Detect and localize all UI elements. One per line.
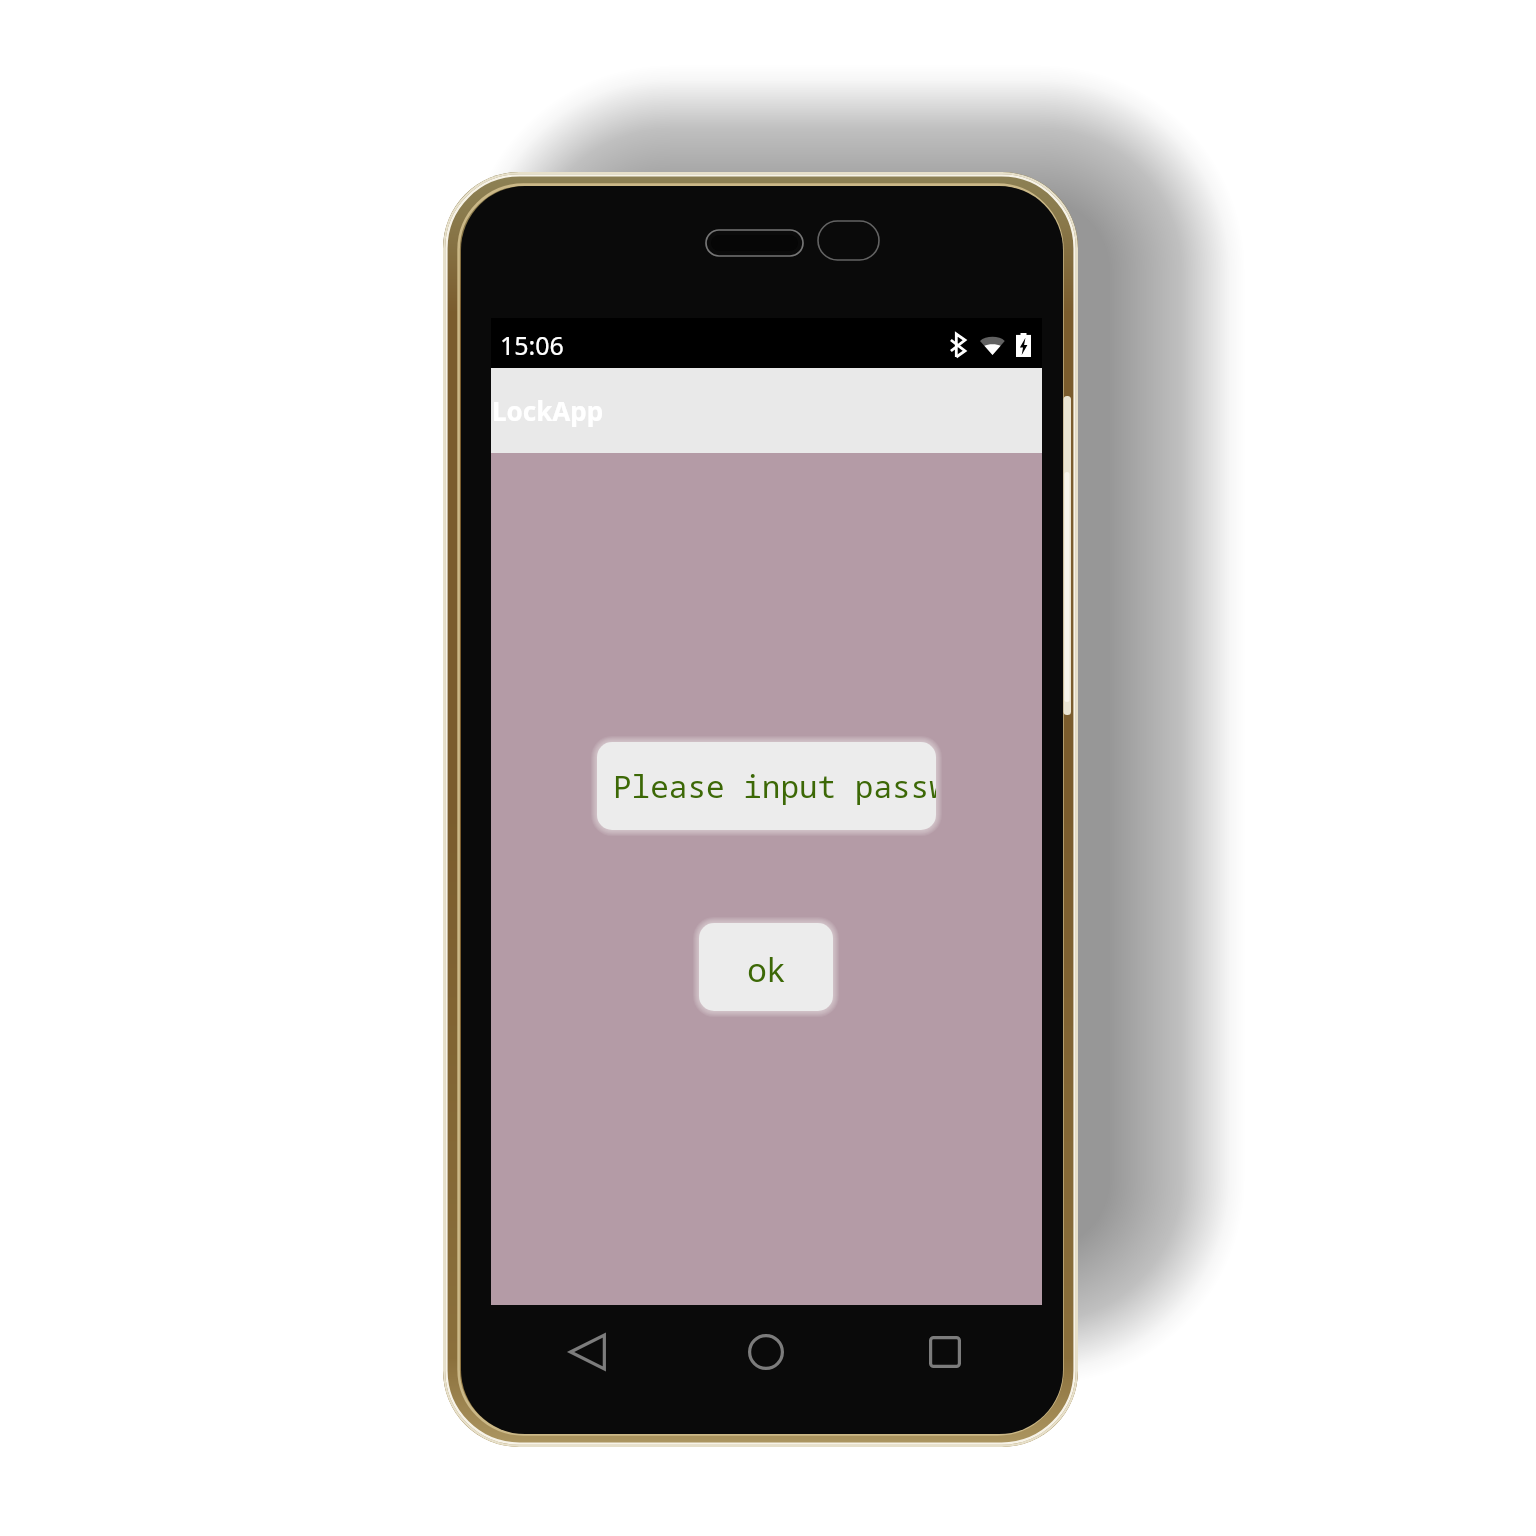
- button[interactable]: Please input passw: [597, 742, 936, 830]
- button[interactable]: Home: [731, 1317, 801, 1387]
- button[interactable]: Recents: [910, 1317, 980, 1387]
- button[interactable]: Back: [553, 1317, 623, 1387]
- staticText: LockApp: [492, 393, 604, 428]
- button[interactable]: ok: [699, 923, 833, 1011]
- staticText: 15:06: [500, 328, 564, 362]
- staticText: ok: [747, 947, 785, 992]
- staticText: Please input passw: [613, 765, 936, 807]
